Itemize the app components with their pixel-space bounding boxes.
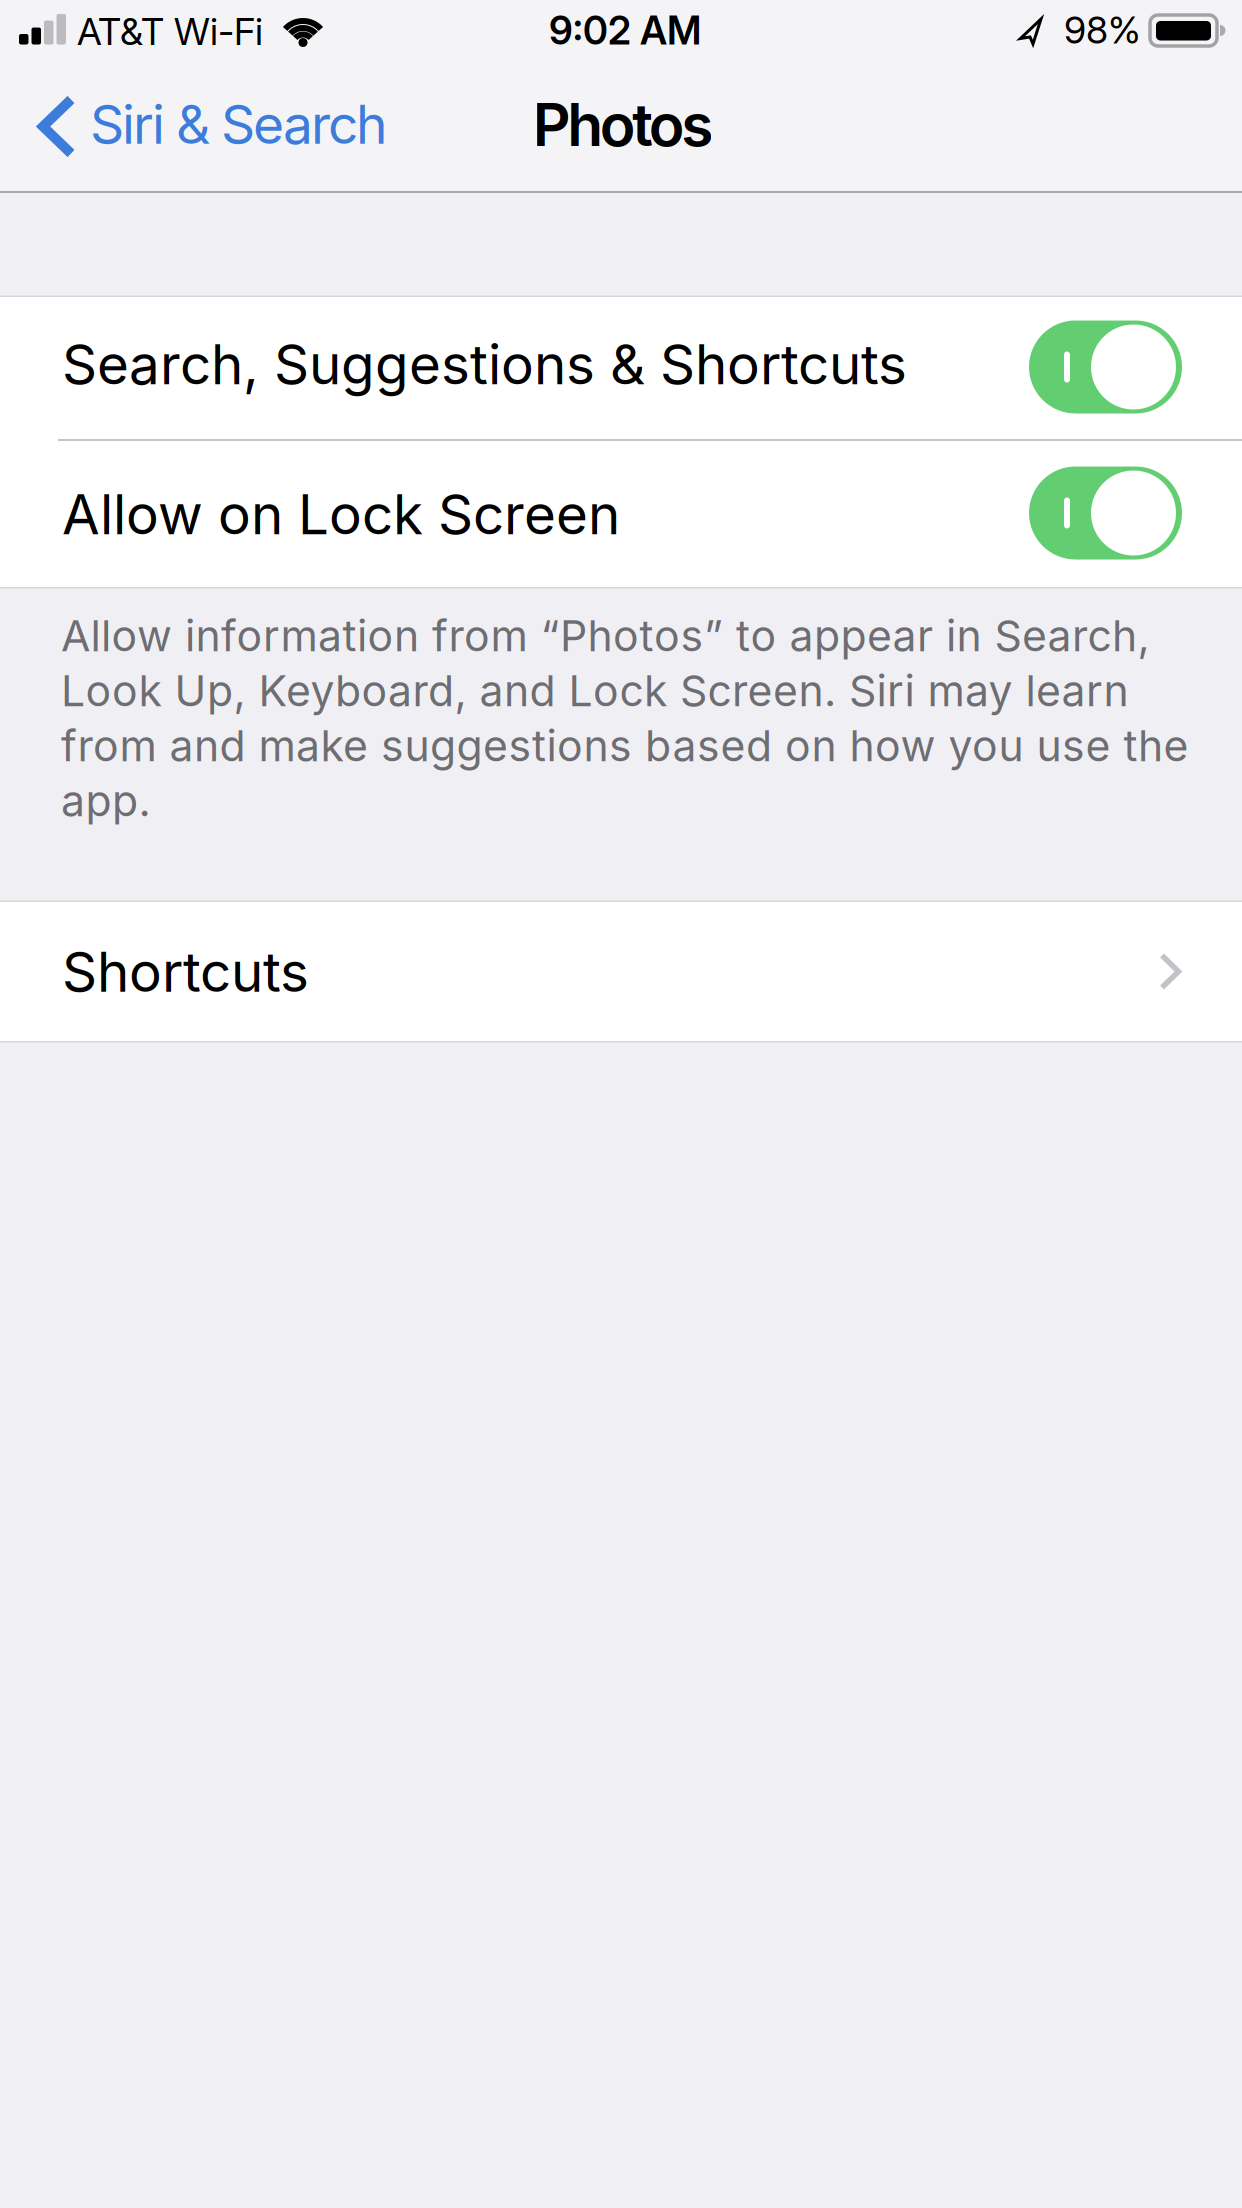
button[interactable]: Shortcuts xyxy=(0,902,1242,1041)
button[interactable]: Siri & Search xyxy=(38,93,388,156)
button[interactable]: Allow on Lock Screen xyxy=(1029,466,1182,559)
staticText: Allow information from “Photos” to appea… xyxy=(61,610,1149,661)
staticText: Search, Suggestions & Shortcuts xyxy=(62,332,907,396)
staticText: AT&T Wi-Fi xyxy=(77,9,263,53)
button[interactable]: Search, Suggestions & Shortcuts xyxy=(1029,320,1182,413)
staticText: Allow on Lock Screen xyxy=(62,482,620,546)
staticText: Shortcuts xyxy=(62,939,309,1004)
staticText: 9:02 AM xyxy=(549,7,701,53)
staticText: 98% xyxy=(1064,8,1141,52)
staticText: Photos xyxy=(533,90,713,159)
staticText: app. xyxy=(61,775,150,826)
staticText: Look Up, Keyboard, and Lock Screen. Siri… xyxy=(61,665,1128,716)
staticText: from and make suggestions based on how y… xyxy=(61,720,1188,771)
staticText: Siri & Search xyxy=(90,93,388,156)
